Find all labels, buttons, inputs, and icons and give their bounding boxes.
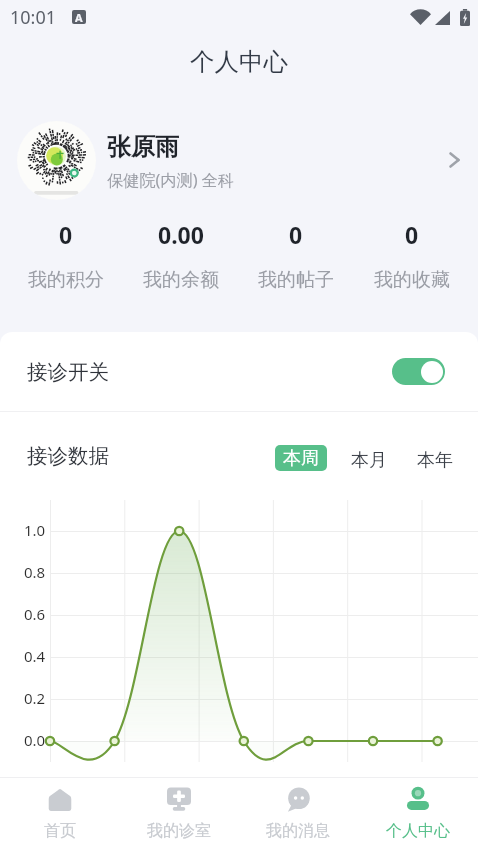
staticText: 0.4	[24, 646, 46, 666]
staticText: 个人中心	[190, 46, 288, 77]
staticText: 我的余额	[143, 268, 219, 292]
button[interactable]: 首页	[0, 778, 119, 850]
staticText: 我的收藏	[374, 268, 450, 292]
staticText: 11.16	[253, 771, 292, 791]
button[interactable]: 本月	[345, 445, 393, 476]
staticText: 11.18	[401, 771, 440, 791]
staticText: 我的消息	[266, 821, 330, 841]
staticText: 个人中心	[386, 821, 450, 841]
staticText: 0	[59, 219, 73, 250]
staticText: 0.2	[24, 688, 46, 708]
staticText: 10:01	[10, 5, 57, 30]
staticText: 0	[405, 219, 419, 250]
staticText: 本年	[417, 449, 453, 472]
button[interactable]: 本周	[275, 445, 327, 471]
staticText: 保健院(内测) 全科	[107, 169, 235, 191]
button[interactable]: 接诊开关	[0, 332, 478, 411]
staticText: 0	[289, 219, 303, 250]
staticText: 11.17	[327, 771, 366, 791]
button[interactable]: 接诊开关	[392, 358, 445, 385]
button[interactable]: 我的诊室	[119, 778, 238, 850]
button[interactable]: 我的消息	[238, 778, 358, 850]
staticText: 0.6	[24, 604, 46, 624]
button[interactable]: 0	[8, 212, 123, 292]
staticText: 11.15	[179, 771, 218, 791]
button[interactable]: 本年	[411, 445, 459, 476]
button[interactable]: 张原雨	[0, 110, 478, 210]
staticText: 11.14	[105, 771, 144, 791]
staticText: A	[75, 10, 83, 24]
staticText: 接诊数据	[27, 443, 109, 469]
button[interactable]: 0	[354, 212, 470, 292]
staticText: 本周	[283, 447, 319, 470]
staticText: 0.0	[24, 730, 46, 750]
staticText: 1.0	[24, 520, 46, 540]
button[interactable]: 0.00	[123, 212, 238, 292]
other: 查看个人资料	[449, 152, 460, 168]
staticText: 本月	[351, 449, 387, 472]
staticText: 我的帖子	[258, 268, 334, 292]
staticText: 我的积分	[28, 268, 104, 292]
staticText: 0.00	[158, 219, 204, 250]
staticText: 接诊开关	[27, 359, 109, 385]
staticText: 0.8	[24, 562, 46, 582]
button[interactable]: 0	[238, 212, 354, 292]
staticText: 我的诊室	[147, 821, 211, 841]
button[interactable]: 个人中心	[358, 778, 478, 850]
staticText: 张原雨	[107, 132, 179, 162]
staticText: 首页	[44, 821, 76, 841]
